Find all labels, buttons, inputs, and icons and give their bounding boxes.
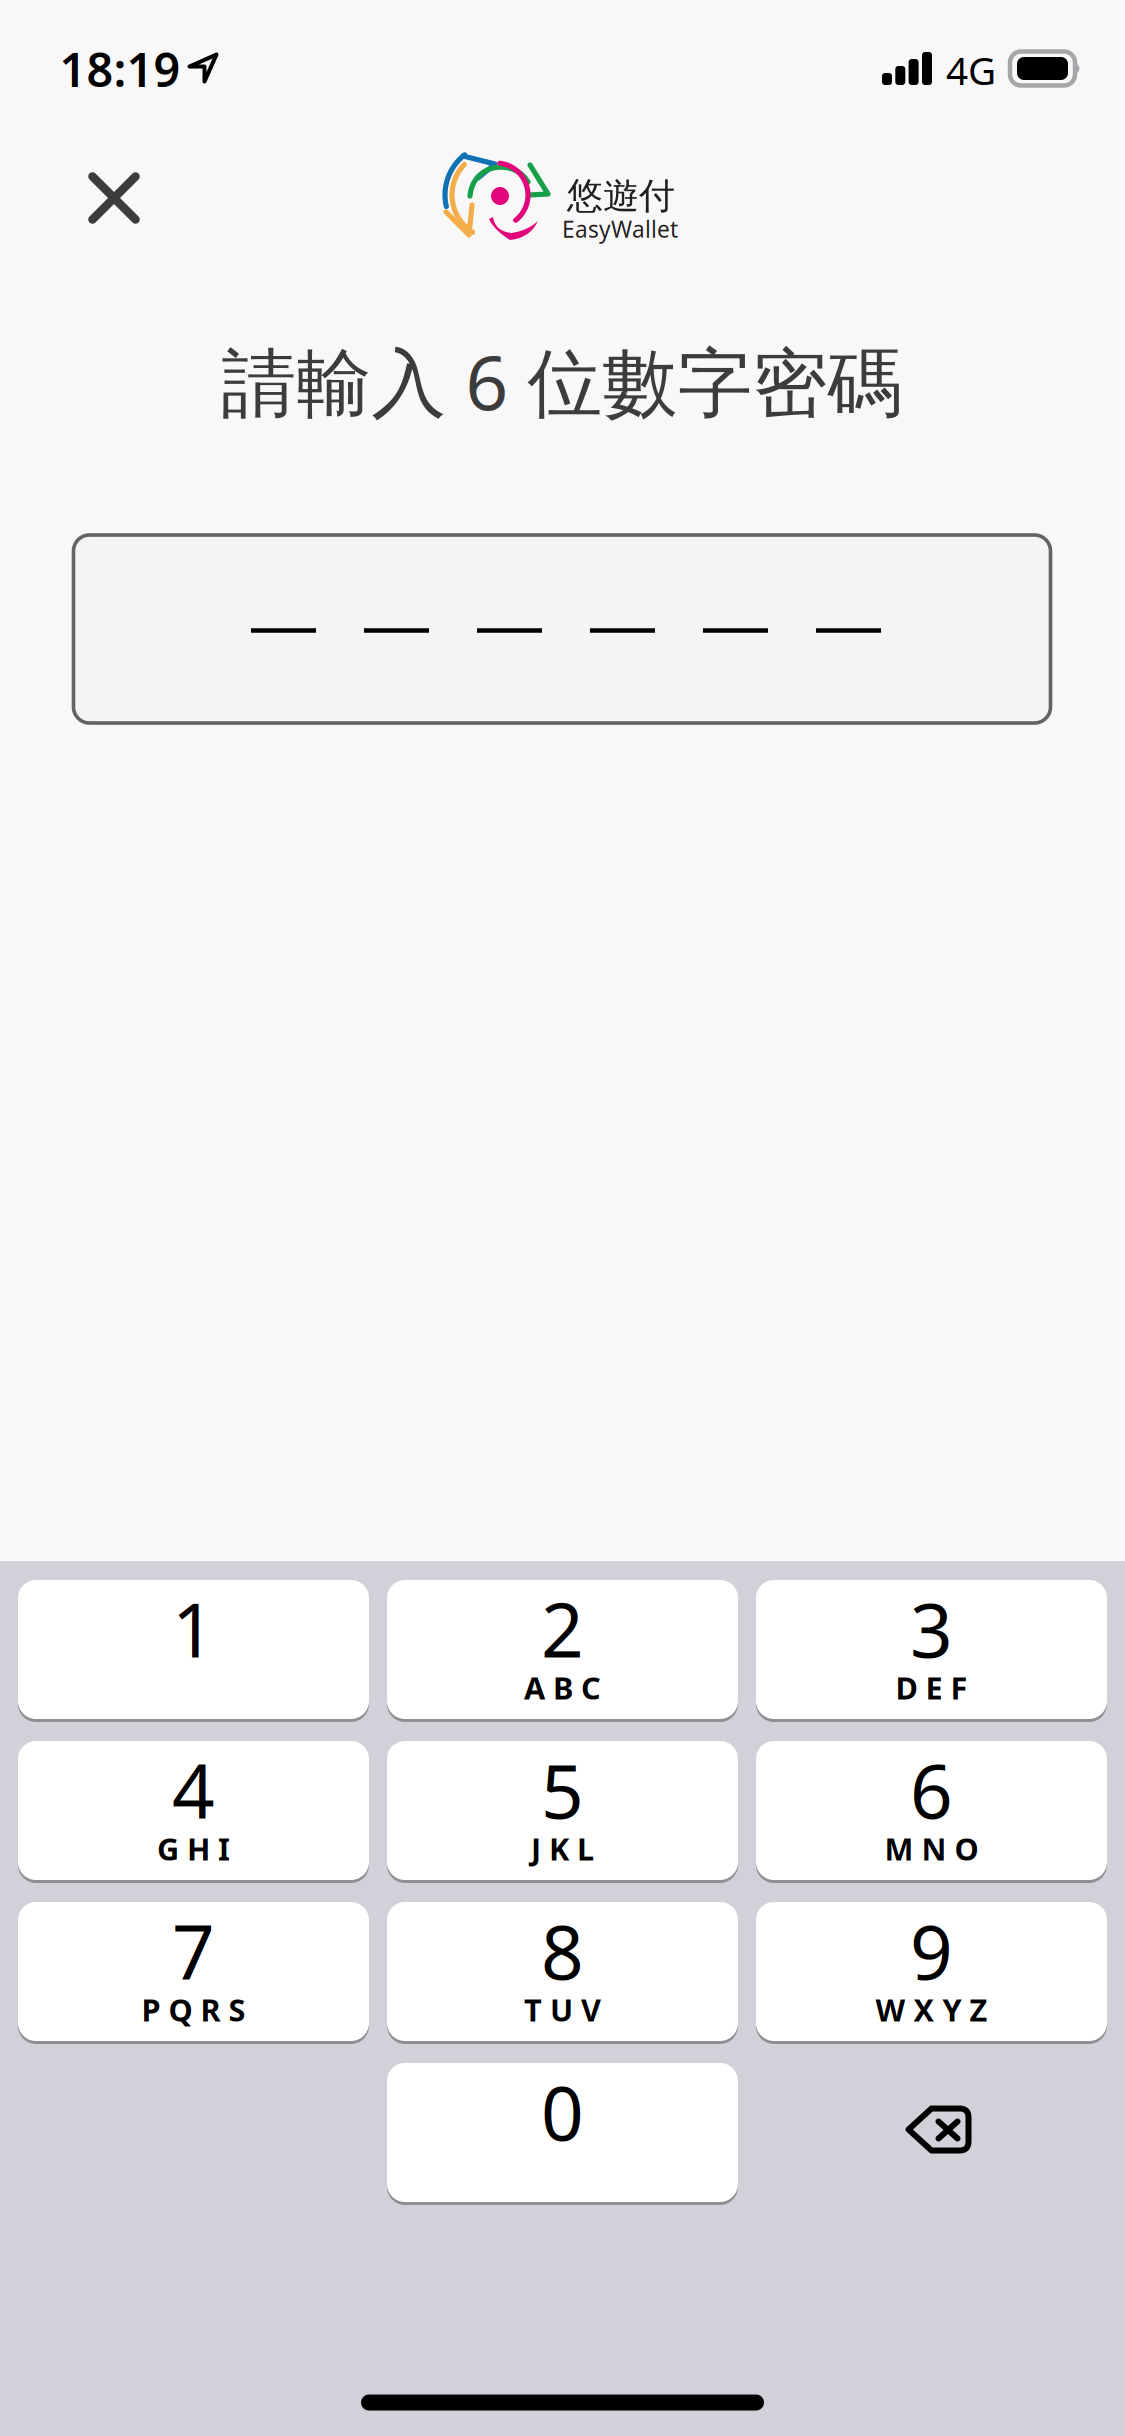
- button[interactable]: 3: [756, 1580, 1107, 1719]
- button[interactable]: 4: [18, 1741, 369, 1880]
- staticText: EasyWallet: [562, 214, 678, 244]
- button[interactable]: 5: [387, 1741, 738, 1880]
- staticText: M N O: [884, 1828, 978, 1869]
- button[interactable]: 6: [756, 1741, 1107, 1880]
- staticText: 7: [172, 1901, 215, 2000]
- staticText: 18:19: [59, 38, 180, 100]
- staticText: 8: [541, 1901, 584, 2000]
- staticText: 1: [172, 1579, 215, 1678]
- staticText: 3: [910, 1579, 953, 1678]
- staticText: 9: [910, 1901, 953, 2000]
- button[interactable]: 2: [387, 1580, 738, 1719]
- staticText: 0: [541, 2062, 584, 2161]
- button[interactable]: 8: [387, 1902, 738, 2041]
- staticText: 4G: [946, 44, 996, 96]
- button[interactable]: 7: [18, 1902, 369, 2041]
- button[interactable]: Close: [58, 142, 169, 253]
- staticText: P Q R S: [141, 1989, 245, 2030]
- staticText: D E F: [895, 1667, 967, 1708]
- staticText: T U V: [524, 1989, 601, 2030]
- button[interactable]: 0: [387, 2063, 738, 2202]
- staticText: 2: [541, 1579, 584, 1678]
- staticText: 悠遊付: [567, 174, 675, 218]
- staticText: 5: [541, 1740, 584, 1839]
- staticText: 請輸入 6 位數字密碼: [221, 331, 902, 431]
- staticText: A B C: [524, 1667, 601, 1708]
- staticText: J K L: [531, 1828, 594, 1869]
- staticText: W X Y Z: [875, 1989, 987, 2030]
- button[interactable]: Delete: [756, 2063, 1107, 2202]
- button[interactable]: 9: [756, 1902, 1107, 2041]
- staticText: 4: [172, 1740, 215, 1839]
- button[interactable]: 1: [18, 1580, 369, 1719]
- staticText: 6: [910, 1740, 953, 1839]
- staticText: G H I: [157, 1828, 230, 1869]
